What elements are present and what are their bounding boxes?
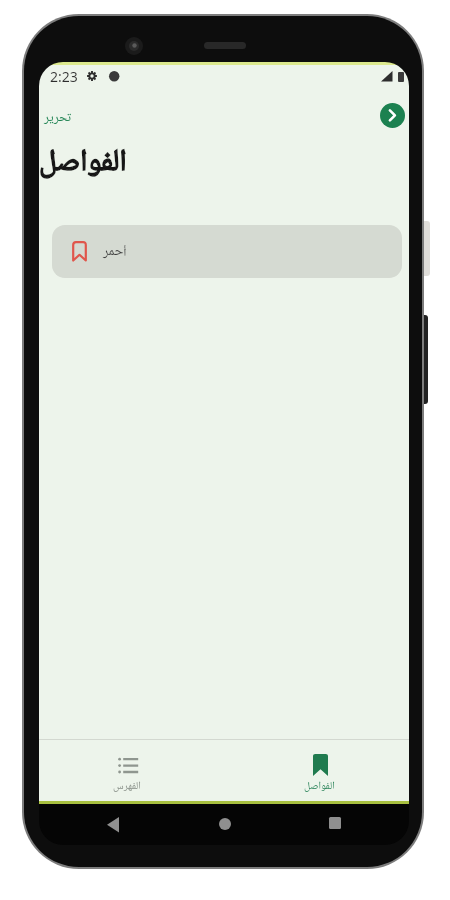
staticText: الفهرس [113,779,141,793]
staticText: تحرير [44,109,72,127]
button[interactable] [107,817,119,833]
button[interactable]: تحرير [41,104,75,132]
button[interactable] [329,817,341,829]
staticText: 2:23 [50,67,78,86]
button[interactable] [219,818,231,830]
staticText: الفواصل [39,142,127,183]
button[interactable] [234,740,399,801]
button[interactable] [49,740,214,801]
staticText: الفواصل [304,779,335,793]
staticText: الفواصل [39,142,127,183]
staticText: أحمر [103,242,127,261]
button[interactable]: أحمر [52,225,402,278]
button[interactable] [380,103,405,128]
